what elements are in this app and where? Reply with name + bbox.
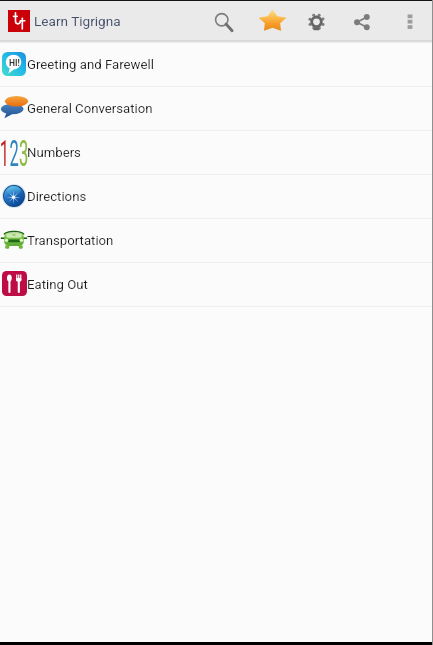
staticText: Greeting and Farewell [27,57,154,72]
button[interactable]: 1 [0,131,433,174]
button[interactable]: Share [340,1,383,40]
button[interactable]: Directions [0,175,433,218]
staticText: HI! [9,58,20,68]
button[interactable]: Learn Tigrigna home [8,10,30,32]
staticText: Transportation [27,233,114,248]
button[interactable]: General Conversation [0,87,433,130]
staticText: Numbers [27,145,81,160]
button[interactable]: Eating Out [0,263,433,306]
button[interactable]: Transportation [0,219,433,262]
staticText: 1 [0,133,9,175]
staticText: 3 [19,133,29,175]
staticText: General Conversation [27,101,153,116]
staticText: Directions [27,189,87,204]
staticText: 2 [9,133,19,175]
button[interactable]: HI! [0,43,433,86]
button[interactable]: Search [203,1,246,40]
button[interactable]: More options [388,1,431,40]
staticText: Learn Tigrigna [34,13,121,29]
button[interactable]: Favourites [251,1,294,40]
button[interactable]: Settings [295,1,338,40]
staticText: Eating Out [27,277,88,292]
